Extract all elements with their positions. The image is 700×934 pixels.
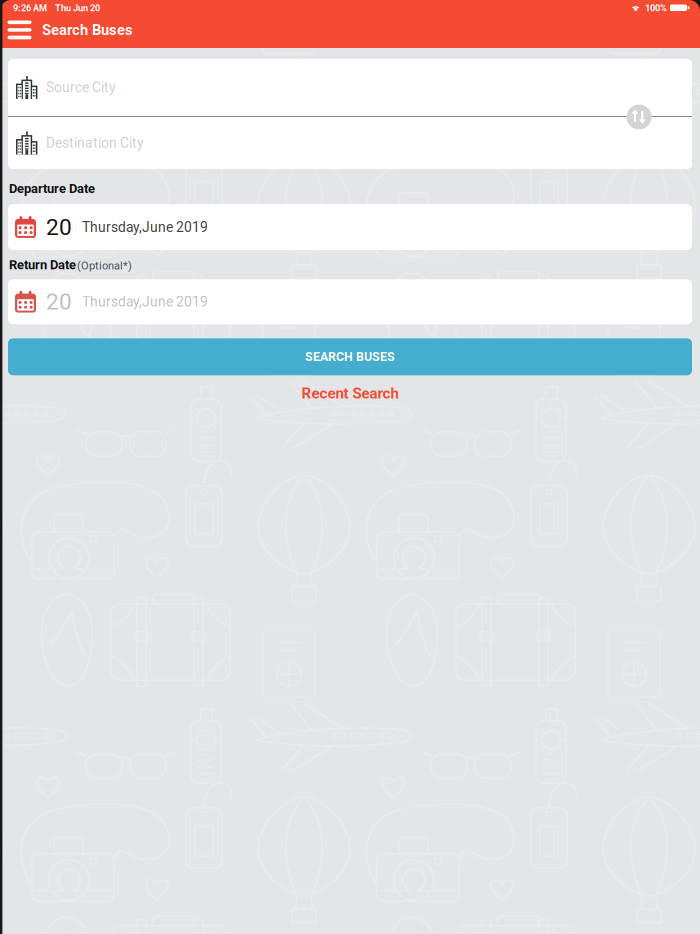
staticText: SEARCH BUSES bbox=[305, 349, 395, 364]
button[interactable]: Source City bbox=[8, 59, 692, 116]
button[interactable]: Destination City bbox=[8, 117, 692, 169]
button[interactable]: 20 bbox=[8, 279, 692, 324]
button[interactable]: Menu bbox=[4, 15, 35, 45]
staticText: Source City bbox=[46, 79, 116, 96]
staticText: 20 bbox=[46, 288, 72, 315]
staticText: Return Date bbox=[9, 257, 76, 272]
staticText: 20 bbox=[46, 214, 72, 240]
button[interactable]: Swap source and destination bbox=[624, 102, 654, 132]
staticText: Thursday,June 2019 bbox=[82, 219, 208, 235]
staticText: (Optional*) bbox=[77, 259, 132, 272]
staticText: Search Buses bbox=[42, 21, 133, 39]
staticText: Thursday,June 2019 bbox=[82, 294, 208, 310]
button[interactable]: 20 bbox=[8, 204, 692, 250]
staticText: Thu Jun 20 bbox=[55, 3, 100, 13]
staticText: Recent Search bbox=[301, 384, 398, 402]
staticText: 100% bbox=[645, 2, 667, 13]
staticText: Departure Date bbox=[9, 181, 95, 196]
staticText: Destination City bbox=[46, 135, 144, 151]
button[interactable]: SEARCH BUSES bbox=[8, 338, 692, 375]
staticText: 9:26 AM bbox=[13, 3, 47, 13]
button[interactable]: Recent Search bbox=[0, 381, 700, 405]
